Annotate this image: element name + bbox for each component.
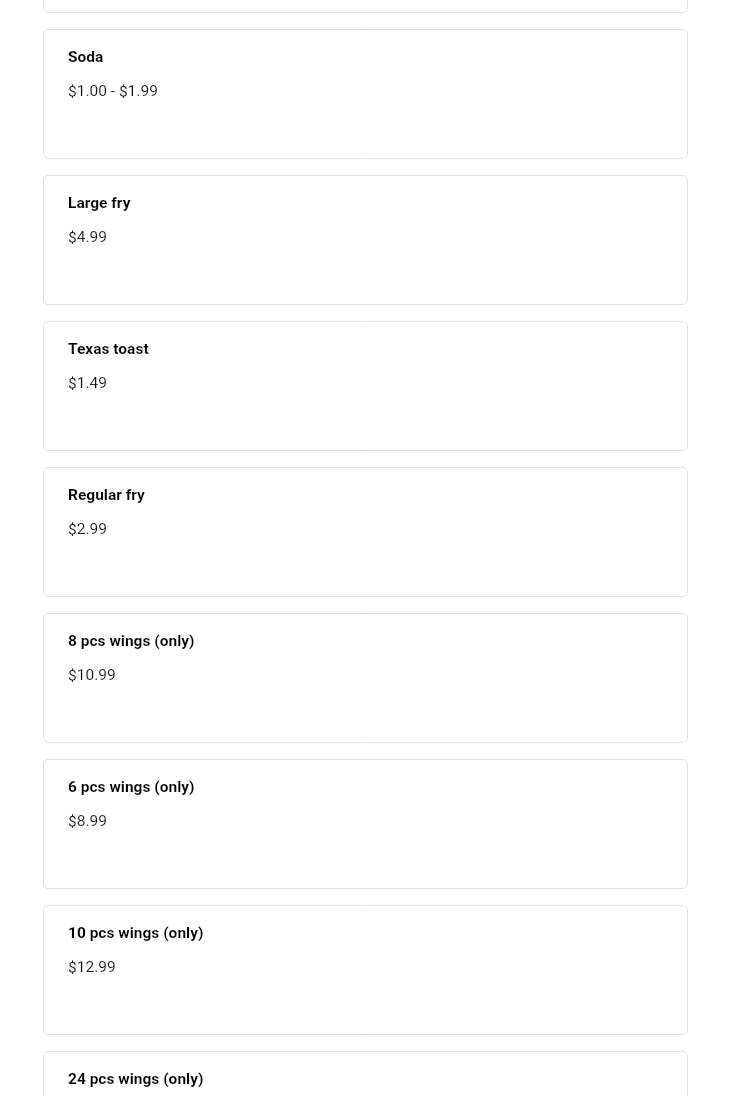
staticText: $1.49 — [68, 374, 107, 392]
staticText: $1.00 - $1.99 — [68, 82, 158, 100]
staticText: $2.99 — [68, 520, 107, 538]
staticText: $4.99 — [68, 228, 107, 246]
staticText: 24 pcs wings (only) — [68, 1070, 204, 1088]
staticText: 6 pcs wings (only) — [68, 778, 195, 796]
button[interactable]: Combo meal, $9.99 — [43, 0, 688, 13]
staticText: 8 pcs wings (only) — [68, 632, 195, 650]
button[interactable]: Regular fry, $2.99 — [43, 467, 688, 597]
staticText: Soda — [68, 48, 104, 66]
staticText: $12.99 — [68, 958, 116, 976]
button[interactable]: 24 pcs wings (only), $28.99 — [43, 1051, 688, 1096]
button[interactable]: Large fry, $4.99 — [43, 175, 688, 305]
button[interactable]: 6 pcs wings (only), $8.99 — [43, 759, 688, 889]
staticText: Regular fry — [68, 486, 145, 504]
staticText: Texas toast — [68, 340, 149, 358]
staticText: $10.99 — [68, 666, 116, 684]
staticText: 10 pcs wings (only) — [68, 924, 204, 942]
button[interactable]: Texas toast, $1.49 — [43, 321, 688, 451]
button[interactable]: 10 pcs wings (only), $12.99 — [43, 905, 688, 1035]
staticText: $8.99 — [68, 812, 107, 830]
staticText: Large fry — [68, 194, 131, 212]
button[interactable]: 8 pcs wings (only), $10.99 — [43, 613, 688, 743]
button[interactable]: Soda, $1.00 - $1.99 — [43, 29, 688, 159]
